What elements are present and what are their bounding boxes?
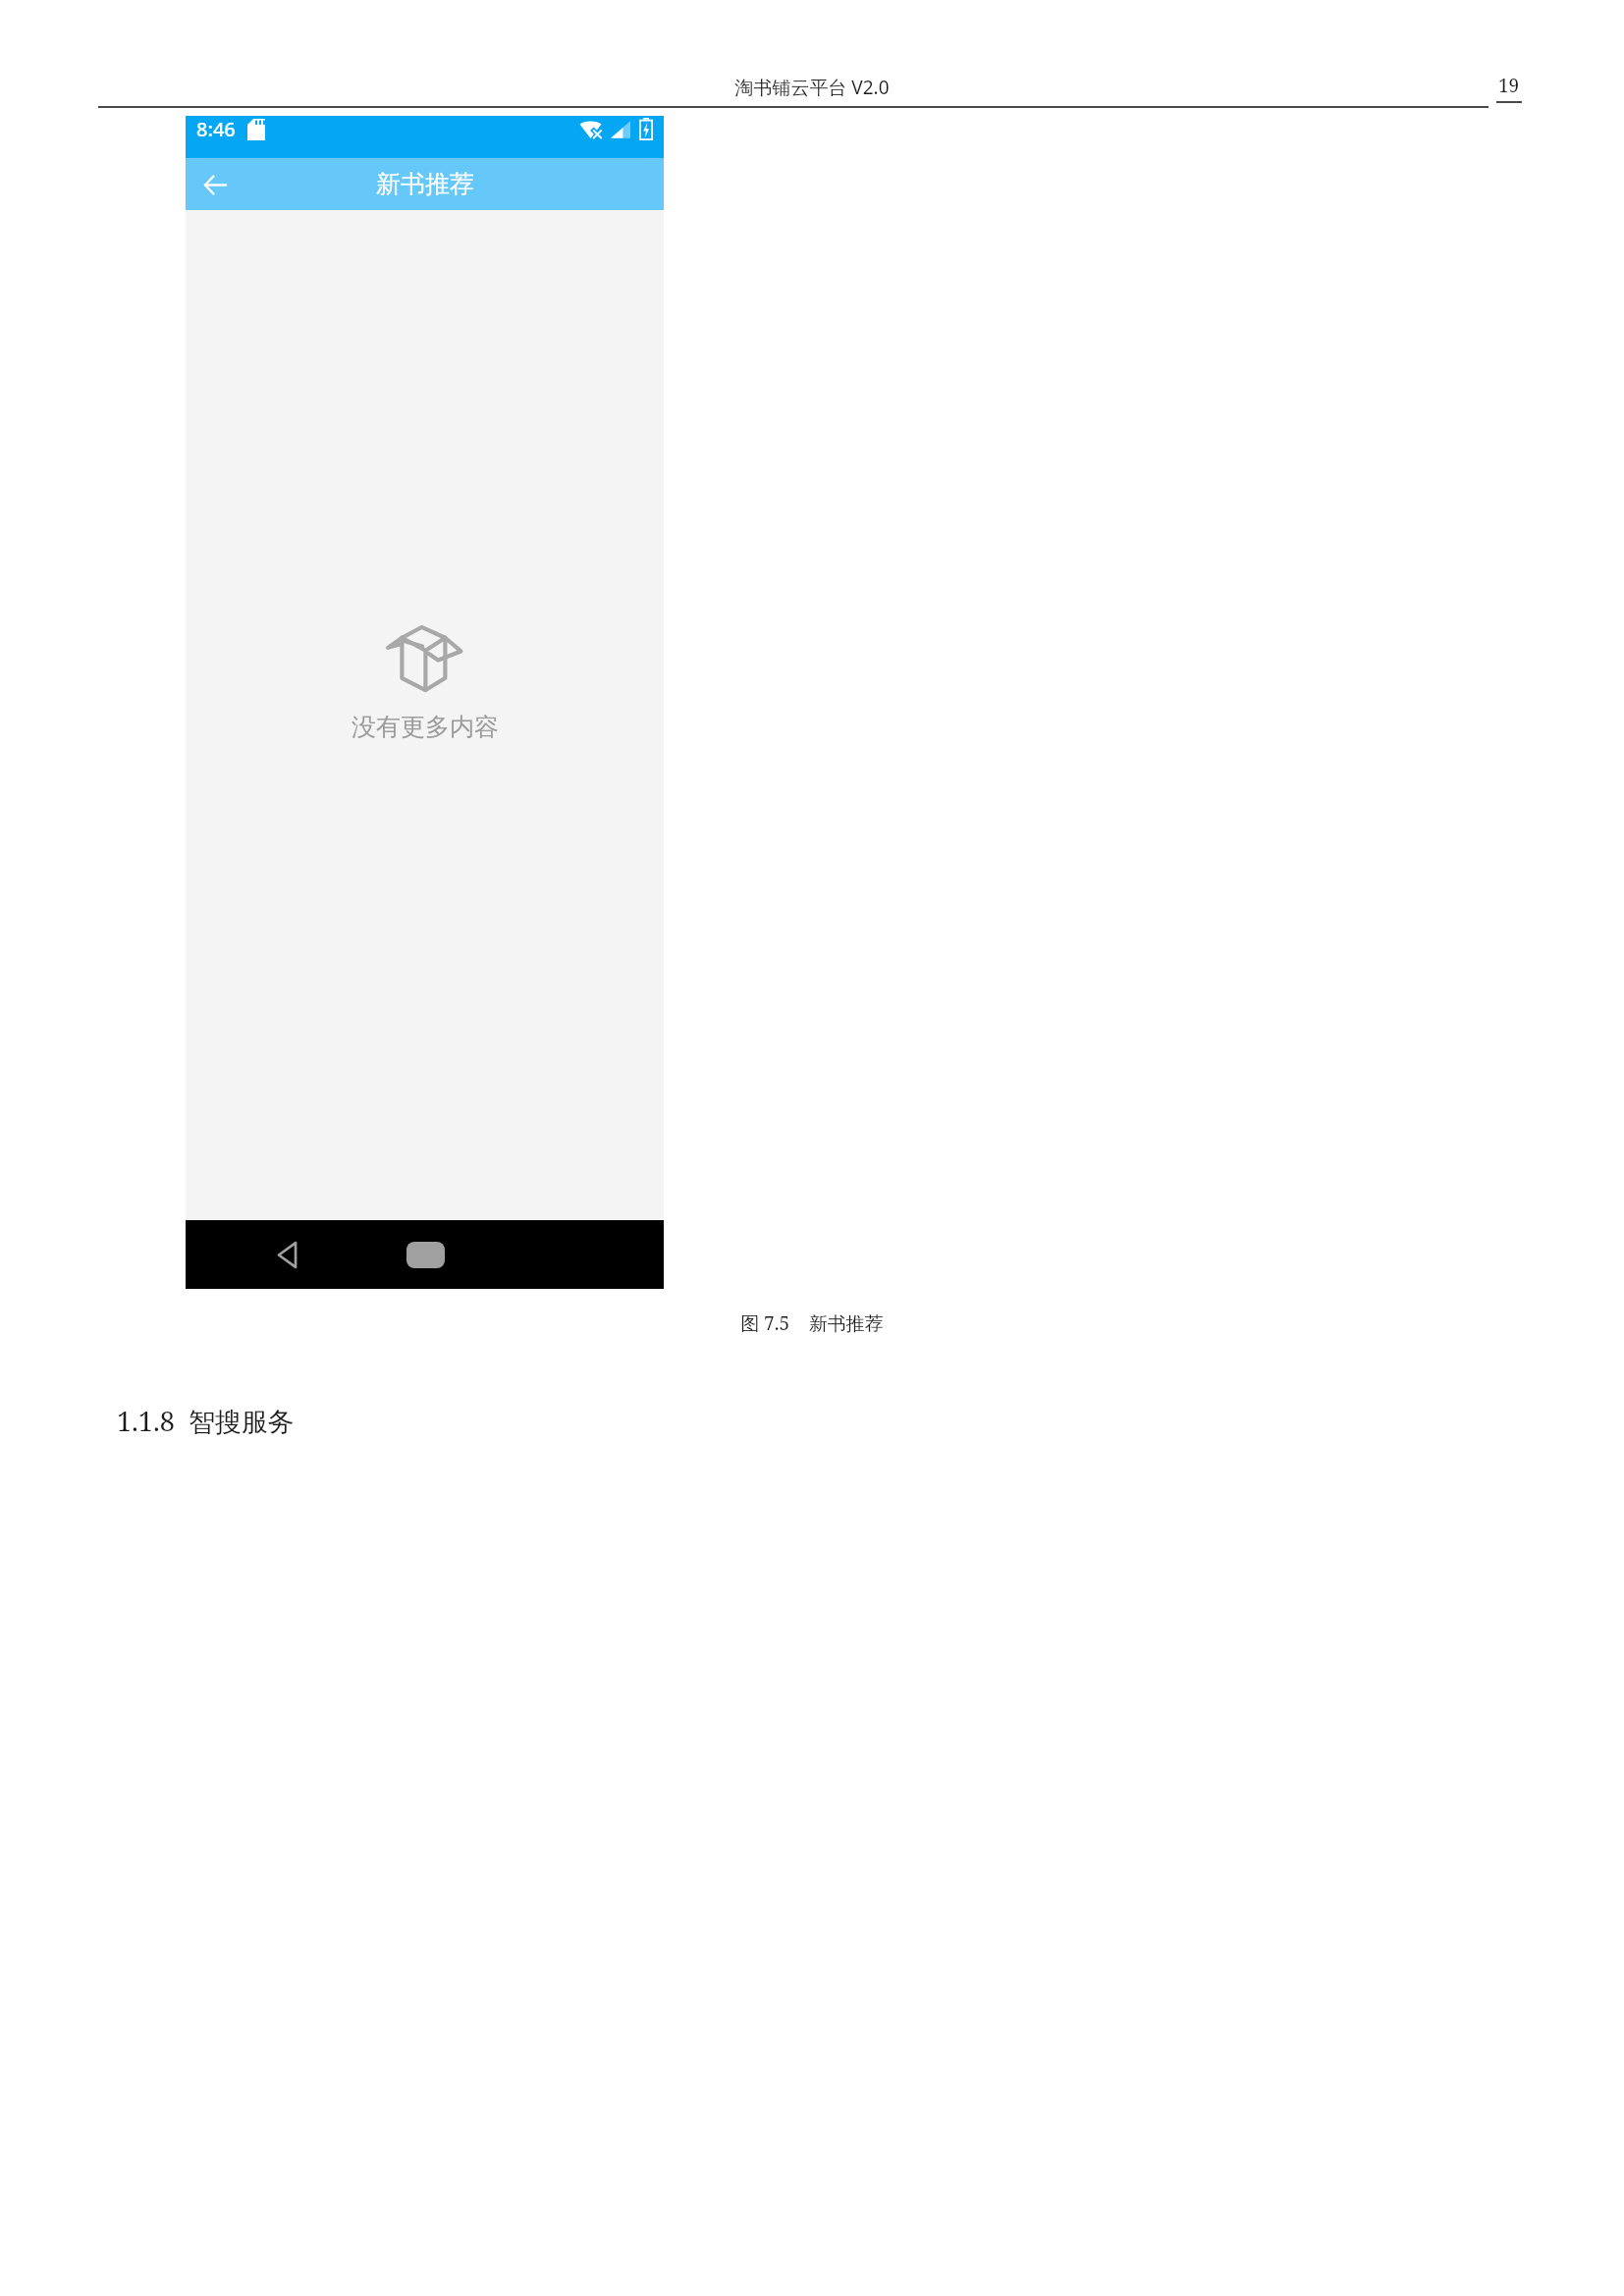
staticText: 没有更多内容: [352, 712, 499, 742]
button[interactable]: Back: [260, 1228, 313, 1281]
staticText: 新书推荐: [376, 169, 474, 199]
staticText: 淘书铺云平台 V2.0: [734, 75, 890, 100]
button[interactable]: Home: [395, 1233, 456, 1276]
button[interactable]: Back: [193, 163, 237, 206]
staticText: 8:46: [196, 116, 236, 142]
staticText: 1.1.8 智搜服务: [117, 1403, 295, 1439]
staticText: 19: [1498, 73, 1520, 98]
staticText: 图 7.5 新书推荐: [0, 1310, 1624, 1336]
